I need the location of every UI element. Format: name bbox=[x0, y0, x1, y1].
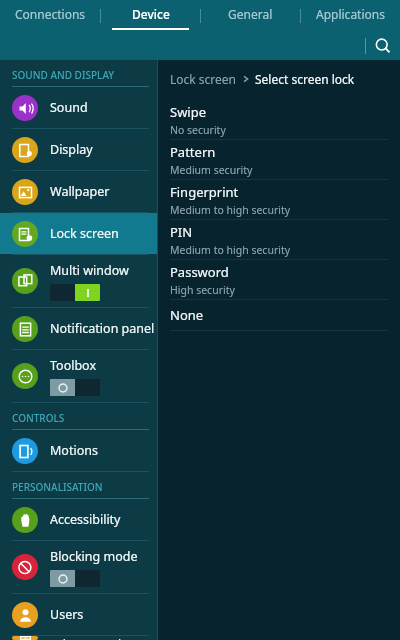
staticText: PERSONALISATION bbox=[12, 480, 103, 494]
staticText: Lock screen bbox=[50, 225, 119, 242]
staticText: Private mode bbox=[50, 636, 129, 640]
staticText: Medium security bbox=[170, 163, 253, 177]
staticText: Sound bbox=[50, 99, 88, 116]
button[interactable]: Search bbox=[366, 32, 400, 60]
staticText: Lock screen bbox=[170, 71, 237, 87]
button[interactable]: Accessibility bbox=[0, 499, 157, 540]
staticText: SOUND AND DISPLAY bbox=[12, 68, 115, 82]
staticText: High security bbox=[170, 283, 235, 297]
staticText: Medium to high security bbox=[170, 203, 291, 217]
staticText: Applications bbox=[316, 6, 385, 22]
button[interactable]: PIN bbox=[158, 220, 400, 259]
staticText: Blocking mode bbox=[50, 548, 138, 565]
button[interactable]: Blocking mode bbox=[0, 541, 157, 593]
button[interactable]: Lock screen bbox=[0, 213, 157, 254]
button[interactable]: Pattern bbox=[158, 140, 400, 179]
staticText: Swipe bbox=[170, 103, 207, 121]
staticText: Pattern bbox=[170, 143, 216, 161]
staticText: Password bbox=[170, 263, 229, 281]
staticText: Medium to high security bbox=[170, 243, 291, 257]
staticText: Wallpaper bbox=[50, 183, 110, 200]
button[interactable]: Password bbox=[158, 260, 400, 299]
button[interactable]: Notification panel bbox=[0, 308, 157, 349]
button[interactable]: Connections bbox=[0, 0, 100, 32]
button[interactable] bbox=[50, 284, 100, 301]
staticText: None bbox=[170, 306, 204, 324]
staticText: Device bbox=[132, 6, 170, 22]
staticText: Accessibility bbox=[50, 511, 121, 528]
staticText: Fingerprint bbox=[170, 183, 239, 201]
button[interactable]: Motions bbox=[0, 430, 157, 471]
button[interactable]: Users bbox=[0, 594, 157, 635]
button[interactable]: Device bbox=[101, 0, 200, 32]
button[interactable]: Sound bbox=[0, 87, 157, 128]
staticText: PIN bbox=[170, 223, 193, 241]
staticText: Toolbox bbox=[50, 357, 97, 374]
staticText: Notification panel bbox=[50, 320, 155, 337]
staticText: Display bbox=[50, 141, 93, 158]
staticText: Multi window bbox=[50, 262, 129, 279]
button[interactable] bbox=[50, 570, 100, 587]
staticText: Connections bbox=[15, 6, 86, 22]
staticText: Users bbox=[50, 606, 84, 623]
staticText: CONTROLS bbox=[12, 411, 65, 425]
button[interactable]: Wallpaper bbox=[0, 171, 157, 212]
button[interactable] bbox=[50, 379, 100, 396]
staticText: Select screen lock bbox=[255, 71, 355, 87]
button[interactable]: Applications bbox=[301, 0, 400, 32]
button[interactable]: Private mode bbox=[0, 636, 157, 640]
button[interactable]: Swipe bbox=[158, 100, 400, 139]
staticText: No security bbox=[170, 123, 226, 137]
button[interactable]: General bbox=[201, 0, 300, 32]
staticText: Motions bbox=[50, 442, 98, 459]
button[interactable]: Display bbox=[0, 129, 157, 170]
button[interactable]: Toolbox bbox=[0, 350, 157, 402]
button[interactable]: None bbox=[158, 300, 400, 330]
staticText: General bbox=[228, 6, 273, 22]
button[interactable]: Fingerprint bbox=[158, 180, 400, 219]
button[interactable]: Multi window bbox=[0, 255, 157, 307]
